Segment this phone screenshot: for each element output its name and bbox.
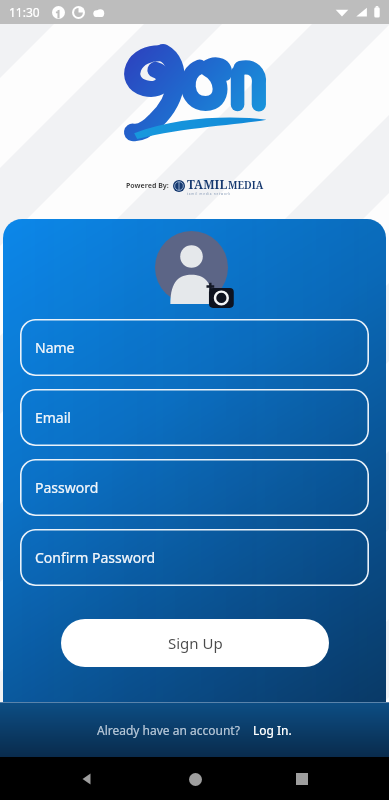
button[interactable]: Confirm Password bbox=[20, 529, 369, 586]
button[interactable]: Password bbox=[20, 459, 369, 516]
staticText: MEDIA bbox=[228, 178, 264, 192]
staticText: Powered By: bbox=[126, 181, 169, 191]
staticText: Log In. bbox=[253, 722, 292, 738]
button[interactable]: Back bbox=[67, 759, 107, 799]
button[interactable]: Email bbox=[20, 389, 369, 446]
staticText: Sign Up bbox=[168, 633, 223, 653]
button[interactable]: Sign Up bbox=[61, 619, 329, 667]
staticText: Email bbox=[35, 408, 71, 427]
button[interactable]: Recent apps bbox=[282, 759, 322, 799]
staticText: t a m i l m e d i a n e t w o r k bbox=[187, 192, 231, 196]
button[interactable]: Home bbox=[175, 759, 215, 799]
button[interactable]: Add profile photo bbox=[155, 231, 235, 311]
staticText: Password bbox=[35, 478, 99, 497]
staticText: TAMIL bbox=[187, 176, 228, 192]
staticText: Confirm Password bbox=[35, 548, 156, 567]
staticText: Name bbox=[35, 338, 75, 357]
staticText: 11:30 bbox=[9, 4, 40, 20]
button[interactable]: Name bbox=[20, 319, 369, 376]
button[interactable]: Log In. bbox=[253, 722, 292, 738]
staticText: Already have an account? bbox=[97, 722, 240, 738]
